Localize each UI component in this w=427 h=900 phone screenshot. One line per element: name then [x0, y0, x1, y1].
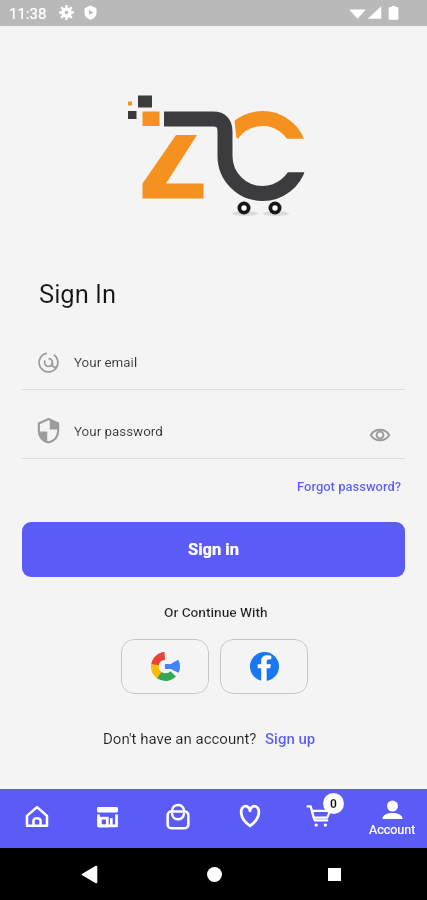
staticText: Your email: [74, 355, 138, 371]
staticText: Forgot password?: [297, 479, 402, 494]
button[interactable]: Show password: [361, 416, 399, 454]
button[interactable]: Home: [207, 867, 222, 882]
button[interactable]: Sign up: [265, 730, 316, 748]
button[interactable]: Account: [357, 789, 427, 848]
button[interactable]: Cart: [287, 789, 357, 848]
button[interactable]: Store: [76, 789, 146, 848]
button[interactable]: Bag: [146, 789, 216, 848]
button[interactable]: [21, 413, 405, 459]
staticText: 11:38: [9, 5, 47, 23]
button[interactable]: Back: [81, 866, 98, 883]
button[interactable]: Sign in: [22, 522, 405, 577]
staticText: Don't have an account?: [103, 730, 257, 748]
staticText: Your password: [74, 424, 163, 440]
staticText: Sign In: [39, 279, 117, 309]
button[interactable]: Sign in with Facebook: [220, 639, 308, 694]
button[interactable]: Your email: [21, 344, 405, 390]
staticText: Sign up: [265, 730, 316, 748]
button[interactable]: Forgot password?: [297, 479, 402, 494]
staticText: Sign in: [188, 540, 239, 559]
button[interactable]: Favorites: [216, 789, 286, 848]
staticText: Or Continue With: [164, 604, 268, 620]
staticText: Account: [369, 822, 416, 837]
button[interactable]: Home: [5, 789, 75, 848]
button[interactable]: Sign in with Google: [121, 639, 209, 694]
staticText: 0: [330, 797, 337, 811]
